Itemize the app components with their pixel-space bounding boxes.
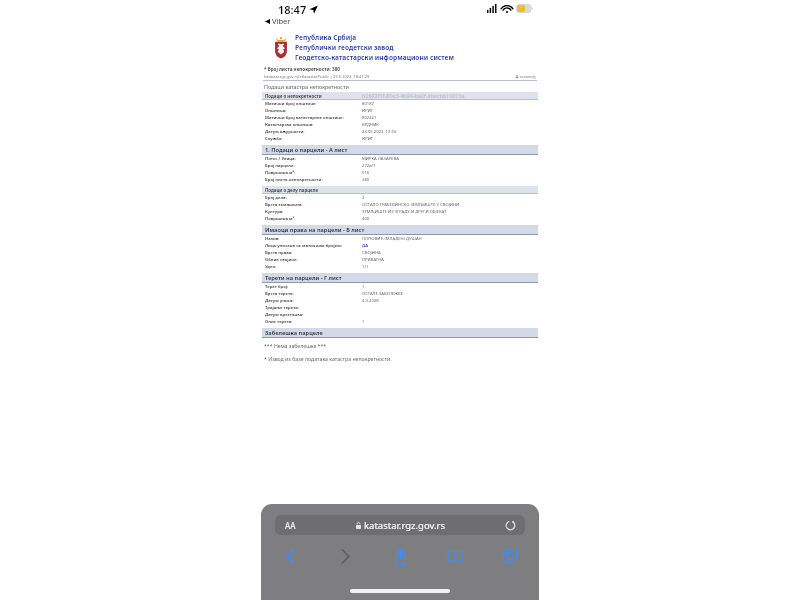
staticText: Површина м²:: [265, 170, 296, 176]
staticText: * Извод из базе података катастра непокр…: [264, 355, 392, 362]
staticText: Катастарска општина:: [265, 122, 314, 128]
staticText: ОСТАЛО ГРАЂЕВИНСКО ЗЕМЉИШТЕ У СВОЈИНИ: [362, 202, 460, 208]
staticText: Врста терета:: [265, 291, 294, 297]
staticText: Подаци о делу парцеле: [265, 187, 318, 193]
staticText: Датум уписа:: [265, 298, 294, 304]
staticText: 1. Подаци о парцели - А лист: [265, 146, 348, 154]
staticText: 24.05.2023. 13:56: [362, 129, 397, 135]
staticText: Подаци о непокретности: [265, 93, 322, 99]
staticText: katastar.rgz.gov.rs/eKatastarPublic | 25…: [264, 74, 370, 79]
button[interactable]: Back: [275, 544, 305, 568]
staticText: Врста земљишта:: [265, 202, 303, 208]
staticText: 400: [362, 216, 370, 222]
staticText: СВОЈИНА: [362, 250, 381, 256]
staticText: *** Нема забелешке ***: [264, 342, 327, 349]
staticText: 516: [362, 170, 370, 176]
staticText: AA: [285, 520, 296, 531]
staticText: Забелешка парцеле: [265, 329, 323, 337]
staticText: Републички геодетски завод: [295, 43, 394, 52]
staticText: 1: [362, 284, 365, 290]
staticText: Матични број општине:: [265, 101, 317, 107]
staticText: Датум престанка:: [265, 312, 304, 318]
staticText: 2: [362, 195, 365, 201]
staticText: Viber: [272, 16, 291, 26]
staticText: Култура:: [265, 209, 284, 215]
button[interactable]: Reload: [505, 520, 516, 531]
staticText: МИРКА ЛАЗАРЕВА: [362, 156, 399, 162]
staticText: 1/1: [362, 264, 369, 270]
button[interactable]: Share: [385, 544, 415, 568]
staticText: штампај: [520, 74, 536, 79]
button[interactable]: AA: [275, 515, 525, 535]
staticText: Лица уписана са матичним бројем:: [265, 243, 342, 249]
staticText: Удео:: [265, 264, 277, 270]
staticText: ЗЕМЉИШТЕ ИЗ ЗГРАДУ И ДРУГИ ОБЈЕКАТ: [362, 209, 447, 215]
staticText: 18:47: [278, 2, 307, 17]
staticText: 80187: [362, 101, 374, 107]
button[interactable]: Bookmarks: [440, 544, 470, 568]
staticText: Назив:: [265, 236, 280, 242]
staticText: Имаоци права на парцели - Б лист: [265, 226, 365, 234]
staticText: 4.3.2008.: [362, 298, 380, 304]
staticText: 802421: [362, 115, 377, 121]
staticText: ОСТАЛЕ ЗАБЕЛЕЖБЕ: [362, 291, 403, 297]
staticText: katastar.rgz.gov.rs: [364, 519, 445, 532]
staticText: ИРИГ: [362, 136, 373, 142]
staticText: 380: [362, 177, 370, 183]
staticText: Број листа непокретности:: [265, 177, 323, 183]
button[interactable]: Forward: [330, 544, 360, 568]
staticText: Површина м²:: [265, 216, 296, 222]
staticText: Трајање терета:: [265, 305, 299, 311]
staticText: Број парцеле:: [265, 163, 295, 169]
staticText: ДА: [362, 243, 369, 249]
staticText: * Број листа непокретности: 380: [264, 66, 340, 72]
staticText: 1: [362, 319, 365, 325]
staticText: b2602f1f-81e3-4b94-ba0f-abecbb10015a: [362, 92, 465, 99]
staticText: Геодетско-катастарски информациони систе…: [295, 53, 454, 62]
staticText: Служба:: [265, 136, 283, 142]
staticText: Опис терета:: [265, 319, 293, 325]
staticText: Подаци катастра непокретности: [264, 83, 349, 90]
staticText: ПОПОВИЋ (МЛАДЕН) ДУШАН: [362, 236, 422, 242]
button[interactable]: Штампај: [515, 74, 536, 79]
staticText: ВРДНИК: [362, 122, 379, 128]
staticText: Матични број катастарске општине:: [265, 115, 344, 121]
staticText: Врста права:: [265, 250, 293, 256]
staticText: Република Србија: [295, 33, 357, 42]
staticText: ПРИВАТНА: [362, 257, 384, 263]
staticText: Општина:: [265, 108, 287, 114]
staticText: Терети на парцели - Г лист: [265, 274, 342, 282]
button[interactable]: Tabs: [495, 544, 525, 568]
staticText: Датум ажурности:: [265, 129, 305, 135]
staticText: Потес / Улица:: [265, 156, 296, 162]
staticText: 272в/1: [362, 163, 376, 169]
staticText: Терет број:: [265, 284, 289, 290]
staticText: Облик својине:: [265, 257, 298, 263]
staticText: ИРИГ: [362, 108, 373, 114]
staticText: Број дела:: [265, 195, 287, 201]
